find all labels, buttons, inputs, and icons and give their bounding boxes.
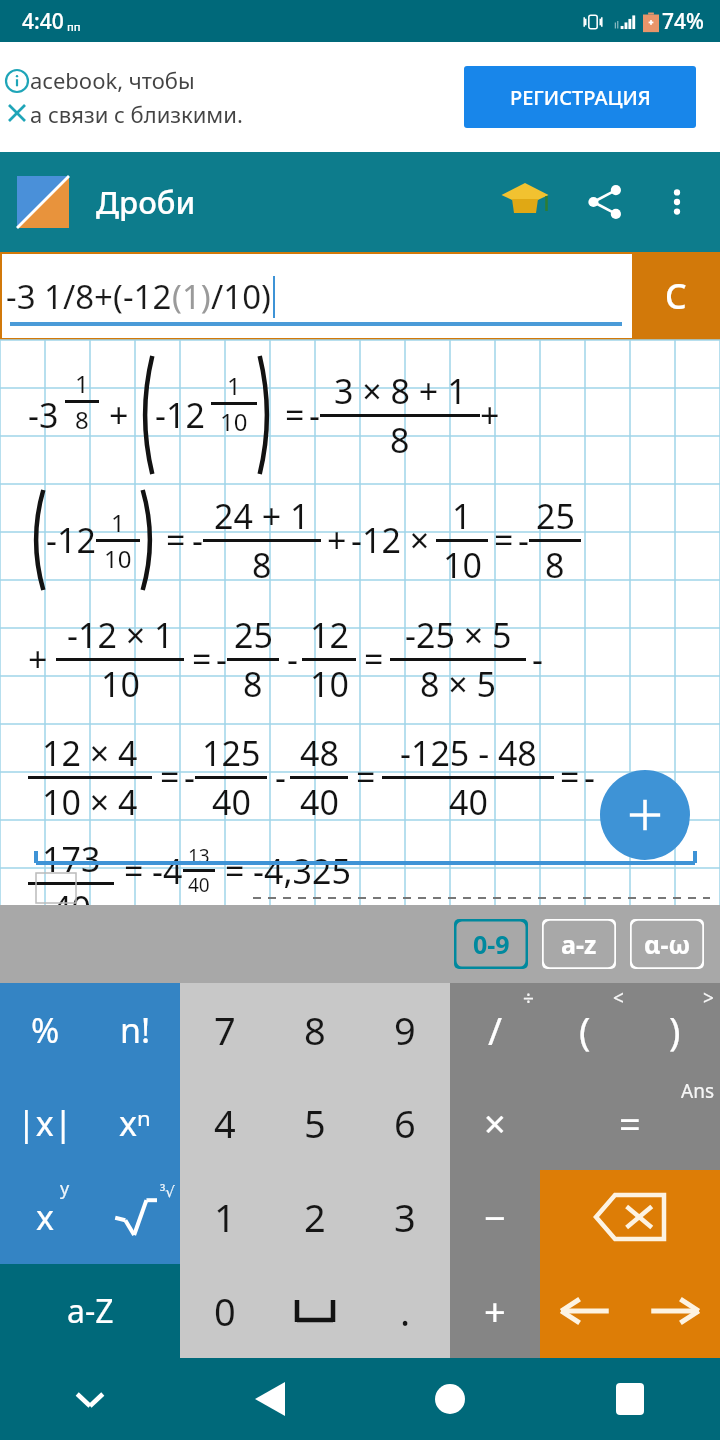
staticText: -3 1/8+(-12 xyxy=(6,274,172,319)
button[interactable]: Close ad xyxy=(3,99,31,127)
button[interactable]: Add xyxy=(600,770,690,860)
button[interactable]: 4 xyxy=(180,1076,270,1170)
staticText: a-z xyxy=(561,927,597,961)
staticText: 8 xyxy=(75,403,89,436)
staticText: y xyxy=(60,1176,70,1201)
staticText: пп xyxy=(67,19,81,34)
staticText: + xyxy=(480,392,500,438)
button[interactable]: 6 xyxy=(360,1076,450,1170)
button[interactable]: Back xyxy=(180,1358,360,1440)
staticText: 12 × 4 xyxy=(42,730,138,776)
staticText: 173 xyxy=(42,836,101,882)
staticText: 1 xyxy=(452,493,472,539)
button[interactable]: More options xyxy=(648,173,706,231)
staticText: 6 xyxy=(394,1097,416,1149)
button[interactable]: − xyxy=(450,1170,540,1264)
staticText: = xyxy=(225,848,245,894)
button[interactable]: a-z xyxy=(542,919,616,969)
staticText: > xyxy=(703,985,714,1011)
button[interactable]: 8 xyxy=(270,983,360,1076)
staticText: = xyxy=(364,636,384,682)
button[interactable]: . xyxy=(360,1264,450,1358)
staticText: % xyxy=(31,1007,60,1053)
button[interactable]: C xyxy=(632,252,720,340)
staticText: 10 xyxy=(104,542,132,575)
button[interactable]: Pro version xyxy=(494,171,556,233)
button[interactable]: + xyxy=(450,1264,540,1358)
staticText: 1 xyxy=(111,506,125,539)
button[interactable]: 9 xyxy=(360,983,450,1076)
button[interactable]: -3 1/8+(-12 xyxy=(2,254,632,338)
staticText: = xyxy=(166,517,186,563)
staticText: -12 × 1 xyxy=(67,612,174,658)
button[interactable] xyxy=(270,1264,360,1358)
button[interactable]: 1 xyxy=(180,1170,270,1264)
staticText: − xyxy=(484,1191,506,1243)
button[interactable]: Share xyxy=(574,171,636,233)
button[interactable]: Hide keyboard xyxy=(0,1358,180,1440)
button[interactable]: α-ω xyxy=(630,919,704,969)
staticText: 8 xyxy=(252,542,272,588)
staticText: -12 × xyxy=(351,517,430,563)
staticText: -125 - 48 xyxy=(400,730,537,776)
staticText: 4 xyxy=(214,1097,236,1149)
button[interactable]: ) xyxy=(630,983,720,1076)
staticText: -4,325 xyxy=(253,848,351,894)
button[interactable]: 7 xyxy=(180,983,270,1076)
button[interactable]: 3 xyxy=(360,1170,450,1264)
staticText: РЕГИСТРАЦИЯ xyxy=(510,84,651,111)
staticText: 40 xyxy=(188,872,210,898)
button[interactable]: App icon xyxy=(14,173,72,231)
staticText: 40 xyxy=(52,885,91,905)
staticText: C xyxy=(665,273,687,319)
staticText: - xyxy=(184,754,195,800)
staticText: 3 xyxy=(394,1191,416,1243)
staticText: 10 xyxy=(310,661,349,707)
button[interactable]: ( xyxy=(540,983,630,1076)
staticText: -4 xyxy=(152,848,183,894)
staticText: = xyxy=(356,754,376,800)
button[interactable]: Move right xyxy=(630,1264,720,1358)
button[interactable]: 0 xyxy=(180,1264,270,1358)
staticText: 40 xyxy=(300,779,339,825)
staticText: - xyxy=(309,392,320,438)
button[interactable]: % xyxy=(0,983,90,1076)
staticText: 2 xyxy=(304,1191,326,1243)
button[interactable]: РЕГИСТРАЦИЯ xyxy=(464,66,696,128)
staticText: = xyxy=(124,848,144,894)
staticText: 10 × 4 xyxy=(42,779,138,825)
button[interactable]: × xyxy=(450,1076,540,1170)
staticText: ) xyxy=(669,1004,681,1056)
button[interactable]: 5 xyxy=(270,1076,360,1170)
button[interactable]: x xyxy=(0,1170,90,1264)
staticText: 48 xyxy=(300,730,339,776)
button[interactable]: / xyxy=(450,983,540,1076)
staticText: = xyxy=(619,1097,641,1149)
button[interactable]: xⁿ xyxy=(90,1076,180,1170)
staticText: - xyxy=(532,636,543,682)
staticText: a-Z xyxy=(67,1289,114,1333)
button[interactable]: = xyxy=(540,1076,720,1170)
staticText: 10 xyxy=(443,542,482,588)
button[interactable]: Backspace xyxy=(540,1170,720,1264)
button[interactable]: 0-9 xyxy=(454,919,528,969)
button[interactable]: n! xyxy=(90,983,180,1076)
button[interactable]: ³√ xyxy=(90,1170,180,1264)
button[interactable]: 2 xyxy=(270,1170,360,1264)
staticText: 74% xyxy=(662,7,704,36)
staticText: а связи с близкими. xyxy=(30,99,243,129)
staticText: + xyxy=(109,392,129,438)
staticText: 8 xyxy=(243,661,263,707)
button[interactable]: Recent apps xyxy=(540,1358,720,1440)
button[interactable]: Ad info xyxy=(3,67,31,95)
staticText: n! xyxy=(120,1007,151,1053)
staticText: 24 + 1 xyxy=(214,493,310,539)
staticText: - xyxy=(216,636,227,682)
button[interactable]: |x| xyxy=(0,1076,90,1170)
button[interactable]: a-Z xyxy=(0,1264,180,1358)
button[interactable]: Move left xyxy=(540,1264,630,1358)
staticText: - xyxy=(192,517,203,563)
button[interactable]: Home xyxy=(360,1358,540,1440)
staticText: × xyxy=(484,1097,506,1149)
staticText: 1 xyxy=(214,1191,236,1243)
